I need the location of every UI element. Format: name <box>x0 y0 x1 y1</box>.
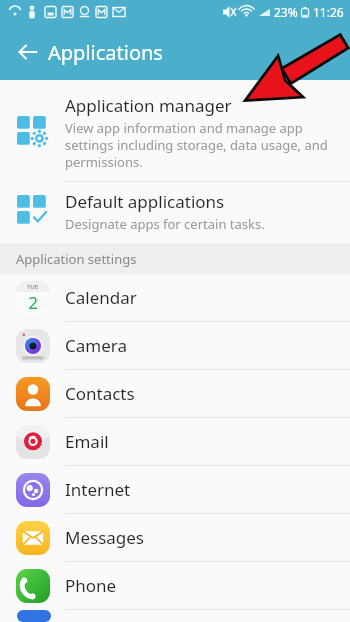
staticText: Email <box>65 430 109 453</box>
staticText: Calendar <box>65 286 137 309</box>
staticText: Camera <box>65 334 127 357</box>
button[interactable]: Camera <box>0 322 350 369</box>
button[interactable]: Messages <box>0 514 350 561</box>
staticText: Contacts <box>65 382 135 405</box>
staticText: Application manager <box>65 94 232 117</box>
staticText: Default applications <box>65 190 225 213</box>
staticText: Internet <box>65 478 131 501</box>
button[interactable]: Email <box>0 418 350 465</box>
staticText: View app information and manage app sett… <box>65 119 336 171</box>
button[interactable]: Phone <box>0 562 350 609</box>
button[interactable]: Default applications <box>0 182 350 243</box>
staticText: Designate apps for certain tasks. <box>65 215 265 233</box>
staticText: Application settings <box>16 250 137 268</box>
button[interactable]: Contacts <box>0 370 350 417</box>
button[interactable]: Application manager <box>0 88 350 181</box>
staticText: TUE <box>27 283 39 291</box>
button[interactable]: Internet <box>0 466 350 513</box>
button[interactable] <box>0 610 350 622</box>
staticText: 11:26 <box>313 4 344 20</box>
staticText: 23% <box>274 4 298 20</box>
button[interactable]: Back <box>10 34 46 70</box>
button[interactable]: TUE <box>0 274 350 321</box>
staticText: 2 <box>28 291 38 314</box>
staticText: Phone <box>65 574 117 597</box>
staticText: Messages <box>65 526 145 549</box>
staticText: Applications <box>48 39 163 66</box>
